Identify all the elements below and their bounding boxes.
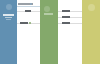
button[interactable]: Explore bbox=[44, 6, 50, 12]
button[interactable]: Settings bbox=[88, 4, 95, 11]
button[interactable]: Profile bbox=[6, 4, 12, 10]
